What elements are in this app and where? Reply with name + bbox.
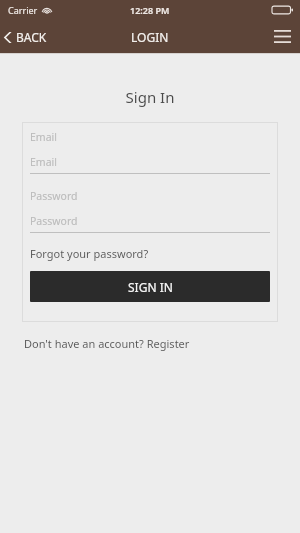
button[interactable]: BACK	[0, 25, 55, 49]
staticText: 12:28 PM	[130, 4, 170, 16]
staticText: Sign In	[0, 87, 300, 107]
staticText: Email	[30, 130, 57, 144]
staticText: BACK	[16, 29, 47, 45]
staticText: Password	[30, 214, 78, 228]
button[interactable]: Menu	[265, 24, 300, 49]
staticText: Carrier	[8, 4, 38, 16]
button[interactable]: Forgot your password?	[30, 246, 149, 261]
button[interactable]: SIGN IN	[30, 271, 270, 302]
button[interactable]: Don't have an account? Register	[24, 336, 190, 351]
staticText: Password	[30, 189, 78, 203]
staticText: SIGN IN	[128, 279, 173, 295]
staticText: Email	[30, 155, 57, 169]
button[interactable]: Password	[30, 214, 270, 228]
button[interactable]: Email	[30, 155, 270, 169]
staticText: LOGIN	[131, 29, 169, 45]
